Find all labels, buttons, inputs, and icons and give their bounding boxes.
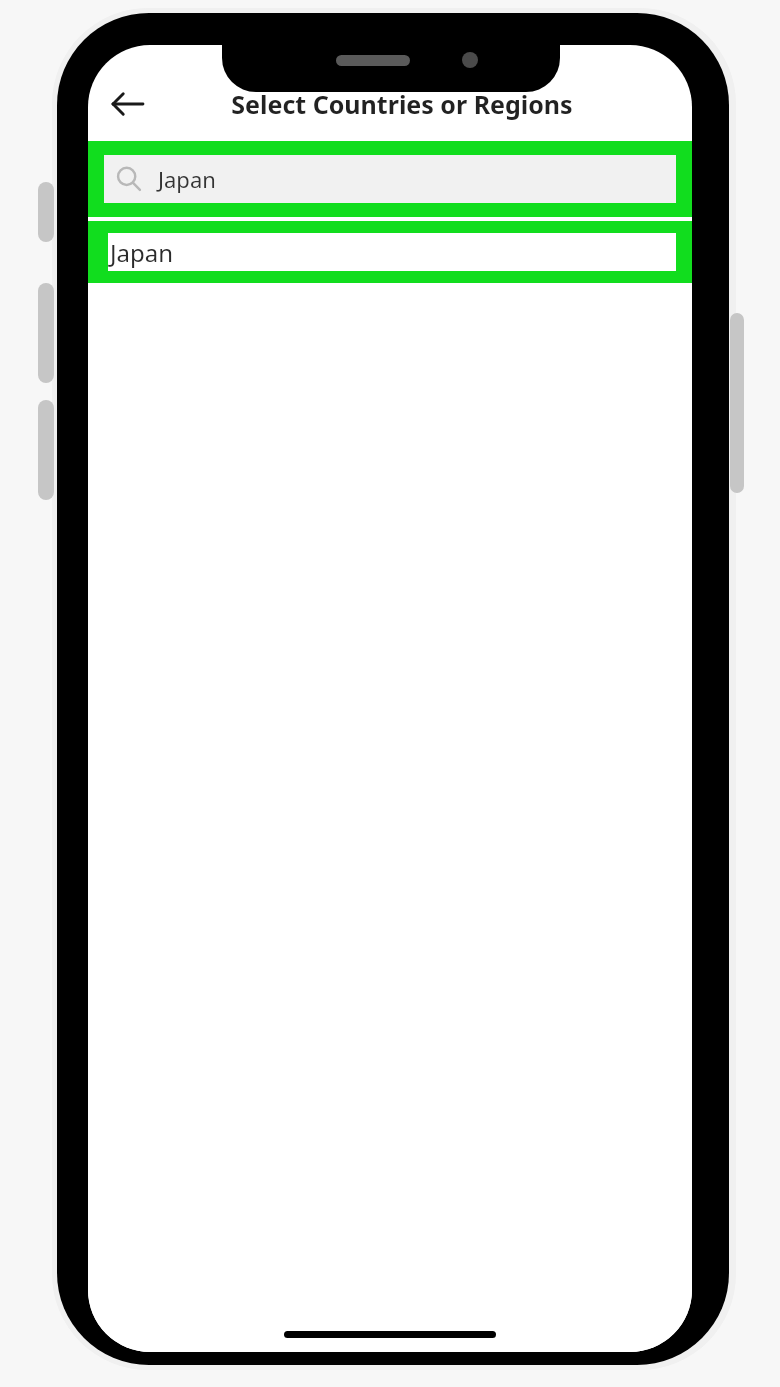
button[interactable]: Back [96, 72, 160, 136]
button[interactable]: Japan [88, 141, 692, 217]
staticText: Japan [158, 164, 216, 194]
staticText: Japan [110, 236, 174, 269]
button[interactable]: Japan [88, 221, 692, 283]
staticText: Select Countries or Regions [231, 87, 573, 121]
